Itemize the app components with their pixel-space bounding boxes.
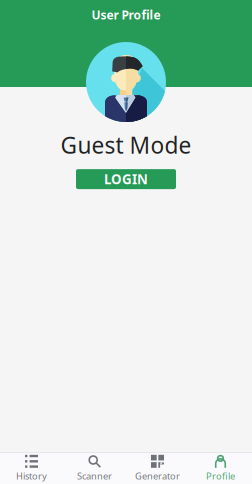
staticText: Profile [206,470,235,482]
button[interactable]: Profile [189,450,252,484]
staticText: Guest Mode [60,130,191,160]
staticText: Generator [135,470,180,482]
button[interactable]: History [0,450,63,484]
staticText: LOGIN [104,170,148,188]
button[interactable]: LOGIN [76,169,176,189]
button[interactable]: Generator [126,450,189,484]
staticText: History [16,470,47,482]
staticText: User Profile [91,7,160,23]
staticText: Scanner [77,470,112,482]
button[interactable]: Scanner [63,450,126,484]
